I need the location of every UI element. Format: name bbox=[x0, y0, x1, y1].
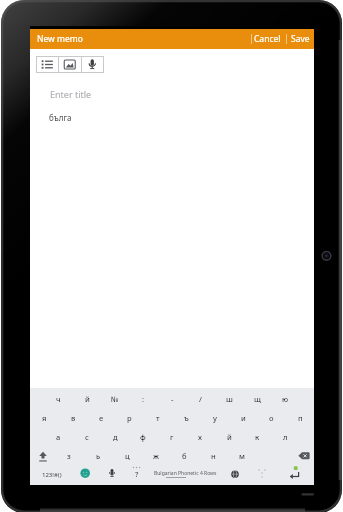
staticText: бълга bbox=[49, 112, 72, 123]
button[interactable]: Save bbox=[286, 31, 314, 47]
button[interactable] bbox=[59, 56, 82, 73]
button[interactable] bbox=[81, 56, 104, 73]
button[interactable]: г bbox=[158, 429, 186, 445]
staticText: ъ bbox=[184, 413, 189, 423]
button[interactable]: п bbox=[286, 410, 314, 426]
button[interactable]: щ bbox=[243, 391, 271, 407]
staticText: т bbox=[156, 413, 160, 423]
staticText: б bbox=[182, 451, 187, 461]
button[interactable]: ч bbox=[44, 391, 72, 407]
staticText: New memo bbox=[37, 33, 83, 45]
staticText: а bbox=[56, 432, 61, 442]
staticText: ю bbox=[282, 394, 289, 404]
staticText: я bbox=[42, 413, 47, 423]
button[interactable]: н bbox=[199, 448, 227, 464]
button[interactable] bbox=[32, 447, 54, 465]
button[interactable]: р bbox=[115, 410, 143, 426]
staticText: № bbox=[111, 394, 119, 404]
button[interactable]: т bbox=[144, 410, 172, 426]
button[interactable]: ф bbox=[129, 429, 157, 445]
button[interactable]: в bbox=[59, 410, 87, 426]
button[interactable]: к bbox=[243, 429, 271, 445]
button[interactable]: с bbox=[73, 429, 101, 445]
button[interactable]: й bbox=[215, 429, 243, 445]
staticText: з bbox=[67, 451, 71, 461]
button[interactable] bbox=[293, 447, 314, 465]
staticText: в bbox=[71, 413, 76, 423]
staticText: л bbox=[283, 432, 288, 442]
staticText: е bbox=[99, 413, 104, 423]
button[interactable] bbox=[75, 465, 95, 484]
staticText: г bbox=[170, 432, 174, 442]
button[interactable]: Bulgarian Phonetic 4 Rows bbox=[140, 465, 230, 481]
staticText: Cancel bbox=[254, 33, 281, 45]
button[interactable] bbox=[102, 465, 122, 484]
button[interactable] bbox=[36, 56, 59, 73]
staticText: ф bbox=[140, 432, 146, 442]
button[interactable]: ш bbox=[215, 391, 243, 407]
staticText: д bbox=[113, 432, 118, 442]
button[interactable]: / bbox=[186, 391, 214, 407]
staticText: 123!#() bbox=[42, 471, 62, 479]
button[interactable]: ь bbox=[84, 448, 112, 464]
button[interactable]: ъ bbox=[172, 410, 200, 426]
button[interactable]: а bbox=[44, 429, 72, 445]
staticText: Save bbox=[291, 33, 310, 45]
staticText: ш bbox=[226, 394, 233, 404]
staticText: ц bbox=[125, 451, 130, 461]
staticText: й bbox=[227, 432, 232, 442]
staticText: / bbox=[199, 394, 202, 404]
button[interactable] bbox=[283, 465, 309, 484]
staticText: м bbox=[239, 451, 245, 461]
button[interactable]: ж bbox=[142, 448, 170, 464]
button[interactable]: л bbox=[271, 429, 299, 445]
staticText: у bbox=[213, 413, 217, 423]
button[interactable]: ю bbox=[271, 391, 299, 407]
staticText: и bbox=[241, 413, 246, 423]
staticText: - bbox=[171, 394, 174, 404]
button[interactable]: й bbox=[73, 391, 101, 407]
button[interactable]: 123!#() bbox=[33, 467, 71, 483]
staticText: Bulgarian Phonetic 4 Rows bbox=[154, 470, 217, 477]
staticText: Enter title bbox=[50, 88, 92, 100]
button[interactable]: и bbox=[229, 410, 257, 426]
button[interactable] bbox=[225, 465, 245, 484]
button[interactable]: м bbox=[228, 448, 256, 464]
button[interactable]: з bbox=[55, 448, 83, 464]
staticText: : bbox=[142, 394, 145, 404]
button[interactable]: у bbox=[201, 410, 229, 426]
button[interactable]: я bbox=[30, 410, 58, 426]
staticText: ь bbox=[96, 451, 101, 461]
staticText: р bbox=[127, 413, 132, 423]
button[interactable]: : bbox=[129, 391, 157, 407]
staticText: х bbox=[198, 432, 202, 442]
button[interactable]: № bbox=[101, 391, 129, 407]
staticText: н bbox=[211, 451, 216, 461]
button[interactable]: - bbox=[158, 391, 186, 407]
staticText: с bbox=[85, 432, 89, 442]
button[interactable]: е bbox=[87, 410, 115, 426]
button[interactable]: б bbox=[170, 448, 198, 464]
staticText: щ bbox=[254, 394, 261, 404]
button[interactable]: о bbox=[257, 410, 285, 426]
staticText: ? bbox=[135, 469, 139, 479]
staticText: о bbox=[269, 413, 274, 423]
staticText: п bbox=[298, 413, 303, 423]
button[interactable]: д bbox=[101, 429, 129, 445]
button[interactable]: ц bbox=[113, 448, 141, 464]
button[interactable] bbox=[40, 84, 324, 104]
staticText: ж bbox=[153, 451, 159, 461]
staticText: й bbox=[85, 394, 90, 404]
staticText: ч bbox=[56, 394, 61, 404]
staticText: к bbox=[255, 432, 260, 442]
button[interactable]: Cancel bbox=[250, 31, 284, 47]
button[interactable]: ? bbox=[123, 466, 151, 482]
button[interactable]: х bbox=[186, 429, 214, 445]
